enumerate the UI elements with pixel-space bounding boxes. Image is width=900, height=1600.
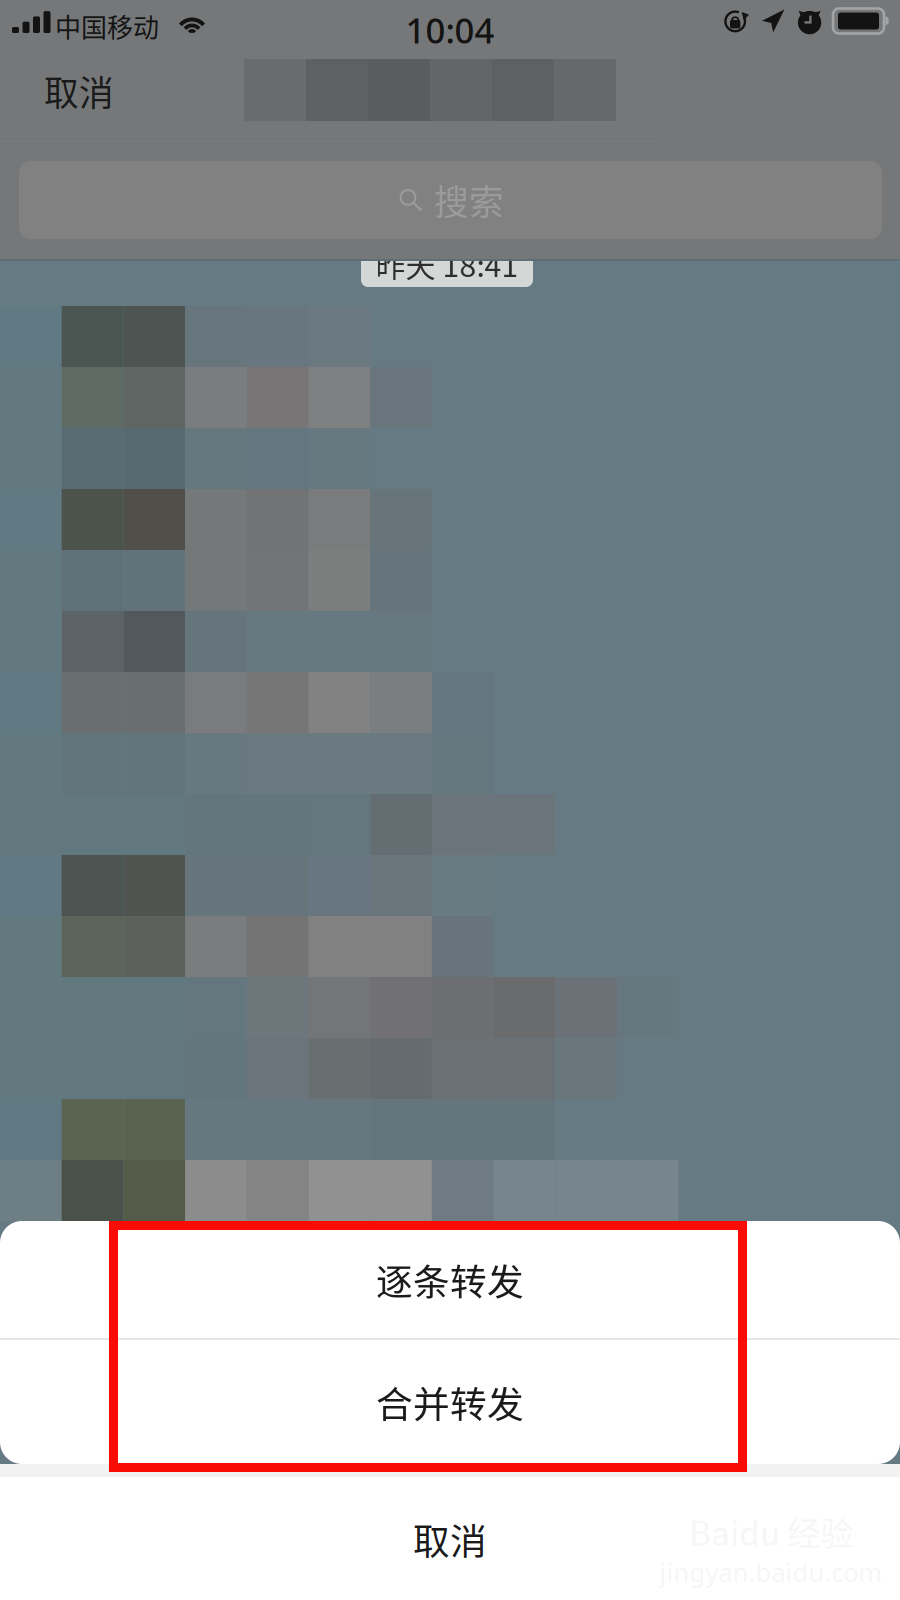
staticText: 昨天 18:41 (375, 242, 518, 286)
staticText: 搜索 (434, 175, 504, 225)
button[interactable]: 逐条转发 (0, 1221, 900, 1338)
staticText: 10:04 (405, 7, 494, 53)
staticText: Baidu 经验 (689, 1507, 853, 1555)
button[interactable]: 取消 (0, 48, 140, 128)
staticText: 取消 (413, 1512, 487, 1566)
staticText: 取消 (44, 66, 114, 116)
staticText: 逐条转发 (376, 1253, 524, 1306)
staticText: 合并转发 (376, 1375, 524, 1429)
button[interactable]: 取消 (0, 1477, 900, 1600)
button[interactable]: 合并转发 (0, 1340, 900, 1464)
staticText: 中国移动 (55, 7, 159, 45)
